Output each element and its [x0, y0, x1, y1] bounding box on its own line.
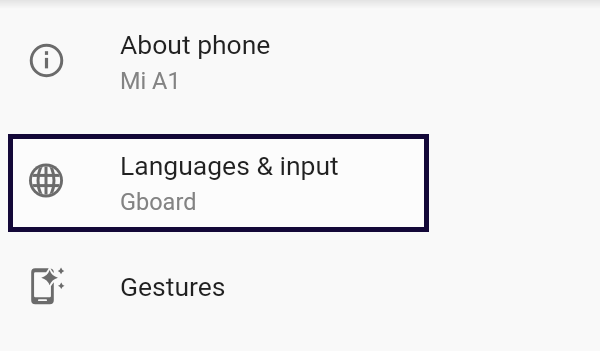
staticText: Languages & input [120, 150, 339, 181]
button[interactable]: Gestures [0, 253, 600, 351]
other: Languages and input [25, 160, 65, 200]
other: Gestures [26, 262, 70, 306]
button[interactable]: Languages and input [0, 132, 600, 232]
other: About phone [26, 40, 66, 80]
staticText: Gestures [120, 271, 226, 302]
button[interactable]: About phone [0, 11, 600, 111]
staticText: Mi A1 [120, 67, 181, 95]
staticText: About phone [120, 29, 271, 60]
staticText: Gboard [120, 188, 197, 216]
